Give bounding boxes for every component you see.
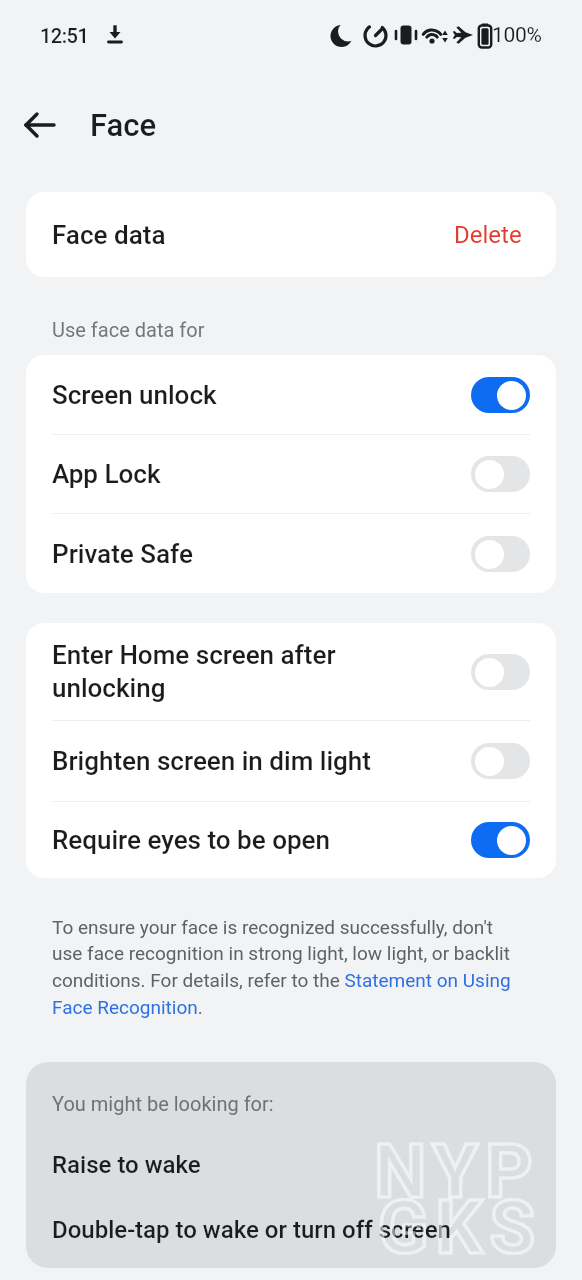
staticText: 100% bbox=[492, 23, 542, 48]
button[interactable]: Private Safe bbox=[26, 514, 556, 593]
staticText: Face data bbox=[52, 220, 166, 250]
button[interactable] bbox=[471, 743, 530, 779]
button[interactable]: Delete bbox=[454, 221, 522, 249]
button[interactable] bbox=[471, 822, 530, 858]
button[interactable]: App Lock bbox=[26, 435, 556, 513]
button[interactable] bbox=[471, 654, 530, 690]
button[interactable] bbox=[471, 536, 530, 572]
button[interactable] bbox=[18, 103, 62, 147]
staticText: You might be looking for: bbox=[52, 1092, 274, 1115]
staticText: Require eyes to be open bbox=[52, 825, 459, 855]
staticText: App Lock bbox=[52, 459, 459, 489]
button[interactable]: To ensure your face is recognized succes… bbox=[52, 916, 511, 1019]
staticText: Screen unlock bbox=[52, 380, 459, 410]
staticText: Use face data for bbox=[52, 318, 205, 341]
staticText: Brighten screen in dim light bbox=[52, 746, 459, 776]
staticText: NYP bbox=[374, 1128, 540, 1215]
staticText: Private Safe bbox=[52, 539, 459, 569]
button[interactable]: Raise to wake bbox=[52, 1151, 201, 1179]
button[interactable]: Face data bbox=[26, 192, 556, 277]
button[interactable]: Brighten screen in dim light bbox=[26, 721, 556, 801]
button[interactable]: Require eyes to be open bbox=[26, 802, 556, 878]
staticText: Enter Home screen after unlocking bbox=[52, 640, 459, 703]
button[interactable] bbox=[471, 377, 530, 413]
staticText: Face bbox=[90, 107, 157, 143]
button[interactable]: Screen unlock bbox=[26, 355, 556, 434]
button[interactable] bbox=[471, 456, 530, 492]
staticText: GKS bbox=[378, 1184, 542, 1271]
button[interactable]: Enter Home screen after unlocking bbox=[26, 623, 556, 720]
staticText: 12:51 bbox=[40, 24, 89, 47]
button[interactable]: Double-tap to wake or turn off screen bbox=[52, 1216, 451, 1244]
